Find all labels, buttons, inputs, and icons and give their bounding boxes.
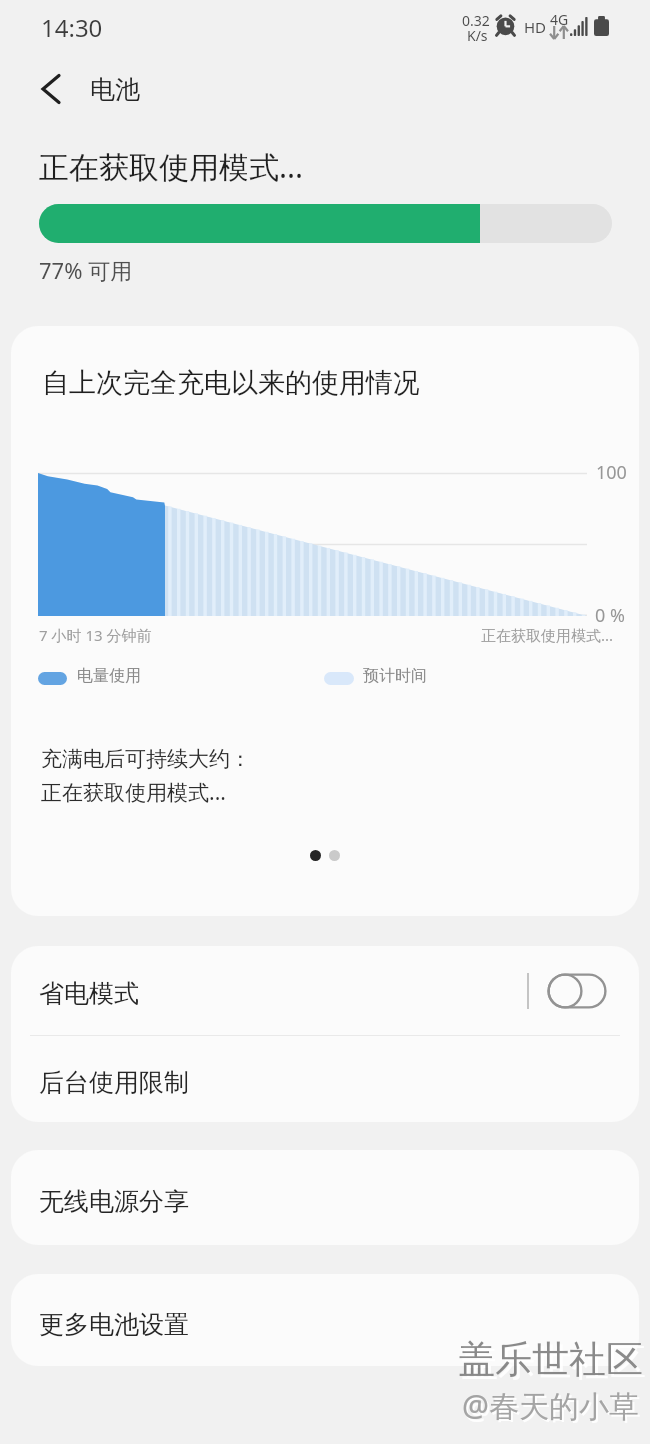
staticText: HD <box>524 17 547 37</box>
staticText: 充满电后可持续大约： <box>41 746 251 772</box>
staticText: 4G <box>550 10 569 29</box>
button[interactable]: 无线电源分享 <box>11 1150 639 1245</box>
button[interactable]: Power saving mode toggle <box>547 973 607 1009</box>
staticText: 0 % <box>595 603 625 628</box>
staticText: 77% 可用 <box>39 255 133 285</box>
staticText: 更多电池设置 <box>39 1309 189 1340</box>
staticText: 盖乐世社区 <box>458 1336 643 1383</box>
staticText: 无线电源分享 <box>39 1186 189 1217</box>
staticText: K/s <box>467 26 488 45</box>
button[interactable]: 省电模式 <box>11 946 639 1035</box>
staticText: 电池 <box>90 74 140 105</box>
staticText: 100 <box>596 460 627 485</box>
staticText: 电量使用 <box>77 666 141 686</box>
staticText: 正在获取使用模式... <box>39 146 304 187</box>
staticText: 14:30 <box>41 11 103 44</box>
staticText: @春天的小草 <box>462 1385 639 1426</box>
staticText: 7 小时 13 分钟前 <box>39 625 152 645</box>
button[interactable]: 更多电池设置 <box>11 1274 639 1366</box>
staticText: @春天的小草 <box>464 1387 641 1428</box>
staticText: 盖乐世社区 <box>461 1339 646 1386</box>
staticText: 省电模式 <box>39 978 139 1009</box>
staticText: 后台使用限制 <box>39 1067 189 1098</box>
button[interactable]: Back <box>25 65 73 113</box>
staticText: 正在获取使用模式... <box>481 625 614 645</box>
staticText: 0.32 <box>462 11 490 30</box>
staticText: 自上次完全充电以来的使用情况 <box>42 366 420 400</box>
button[interactable]: 后台使用限制 <box>11 1036 639 1122</box>
staticText: 预计时间 <box>363 666 427 686</box>
staticText: 正在获取使用模式... <box>41 778 226 807</box>
